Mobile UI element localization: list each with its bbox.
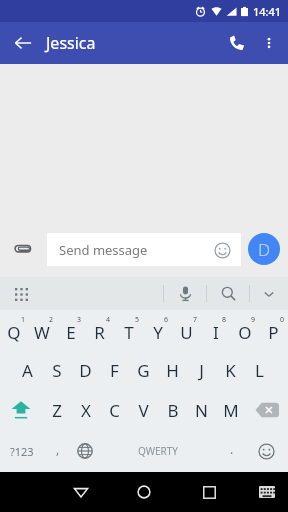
staticText: K	[225, 359, 236, 382]
staticText: L	[255, 359, 264, 382]
staticText: X	[81, 399, 91, 422]
staticText: O	[238, 321, 252, 344]
staticText: J	[199, 359, 204, 382]
staticText: E	[66, 321, 76, 344]
staticText: W	[34, 321, 50, 344]
staticText: 14:41	[253, 4, 282, 19]
button[interactable]: M	[216, 390, 245, 430]
staticText: 8	[222, 315, 227, 325]
button[interactable]: W	[28, 310, 56, 350]
staticText: P	[268, 321, 279, 344]
staticText: G	[137, 359, 150, 382]
button[interactable]: H	[158, 350, 187, 390]
staticText: V	[138, 399, 149, 422]
button[interactable]: A	[13, 350, 42, 390]
staticText: D	[258, 238, 271, 261]
staticText: T	[124, 321, 134, 344]
button[interactable]: Backspace	[245, 390, 288, 430]
button[interactable]: S	[42, 350, 71, 390]
button[interactable]: G	[129, 350, 158, 390]
button[interactable]: B	[158, 390, 187, 430]
button[interactable]: Send message	[47, 233, 241, 266]
button[interactable]: Recent apps	[192, 475, 226, 509]
button[interactable]: ,	[44, 430, 71, 472]
button[interactable]: Z	[42, 390, 71, 430]
button[interactable]: P	[259, 310, 288, 350]
staticText: R	[94, 321, 105, 344]
button[interactable]: C	[100, 390, 129, 430]
button[interactable]: Home	[127, 475, 161, 509]
button[interactable]: Back	[64, 475, 98, 509]
staticText: 4	[106, 315, 111, 325]
staticText: B	[167, 399, 179, 422]
button[interactable]: T	[114, 310, 143, 350]
button[interactable]: I	[201, 310, 230, 350]
staticText: U	[180, 321, 193, 344]
staticText: Y	[153, 321, 163, 344]
button[interactable]: K	[216, 350, 245, 390]
staticText: S	[52, 359, 62, 382]
staticText: Z	[52, 399, 62, 422]
button[interactable]: ?123	[0, 430, 44, 472]
button[interactable]: Q	[0, 310, 28, 350]
staticText: ?123	[10, 444, 34, 459]
staticText: .	[230, 441, 234, 457]
button[interactable]: QWERTY	[98, 430, 218, 472]
button[interactable]: Shift	[0, 390, 42, 430]
staticText: I	[213, 321, 219, 344]
button[interactable]: Expand	[250, 277, 288, 310]
staticText: 2	[49, 315, 54, 325]
staticText: 9	[251, 315, 256, 325]
staticText: C	[109, 399, 120, 422]
staticText: H	[166, 359, 179, 382]
staticText: Jessica	[46, 32, 96, 54]
button[interactable]: Y	[143, 310, 172, 350]
button[interactable]: D	[248, 233, 280, 265]
button[interactable]: .	[218, 430, 245, 472]
staticText: N	[195, 399, 208, 422]
staticText: QWERTY	[138, 444, 179, 458]
button[interactable]: V	[129, 390, 158, 430]
button[interactable]: E	[56, 310, 85, 350]
button[interactable]: Apps	[8, 281, 34, 307]
staticText: M	[223, 399, 239, 422]
button[interactable]: Search	[207, 277, 249, 310]
button[interactable]: Switch keyboard	[252, 477, 282, 507]
staticText: D	[79, 359, 92, 382]
button[interactable]: L	[245, 350, 274, 390]
button[interactable]: Attach	[8, 234, 38, 264]
button[interactable]: J	[187, 350, 216, 390]
button[interactable]: Emoji	[245, 430, 288, 472]
button[interactable]: Back	[8, 28, 38, 58]
staticText: 7	[193, 315, 198, 325]
staticText: ,	[56, 441, 60, 457]
staticText: 5	[135, 315, 140, 325]
staticText: Q	[7, 321, 21, 344]
button[interactable]: D	[71, 350, 100, 390]
button[interactable]: O	[230, 310, 259, 350]
button[interactable]: Call	[220, 26, 254, 60]
button[interactable]: Change language	[71, 430, 98, 472]
button[interactable]: Emoji	[211, 239, 233, 261]
button[interactable]: N	[187, 390, 216, 430]
staticText: 1	[21, 315, 26, 325]
button[interactable]: Voice input	[164, 277, 206, 310]
staticText: F	[110, 359, 119, 382]
staticText: 6	[164, 315, 169, 325]
button[interactable]: X	[71, 390, 100, 430]
staticText: A	[22, 359, 33, 382]
button[interactable]: U	[172, 310, 201, 350]
staticText: 0	[280, 315, 285, 325]
button[interactable]: R	[85, 310, 114, 350]
staticText: Send message	[59, 241, 148, 259]
button[interactable]: More options	[254, 28, 284, 58]
staticText: 3	[77, 315, 82, 325]
button[interactable]: F	[100, 350, 129, 390]
